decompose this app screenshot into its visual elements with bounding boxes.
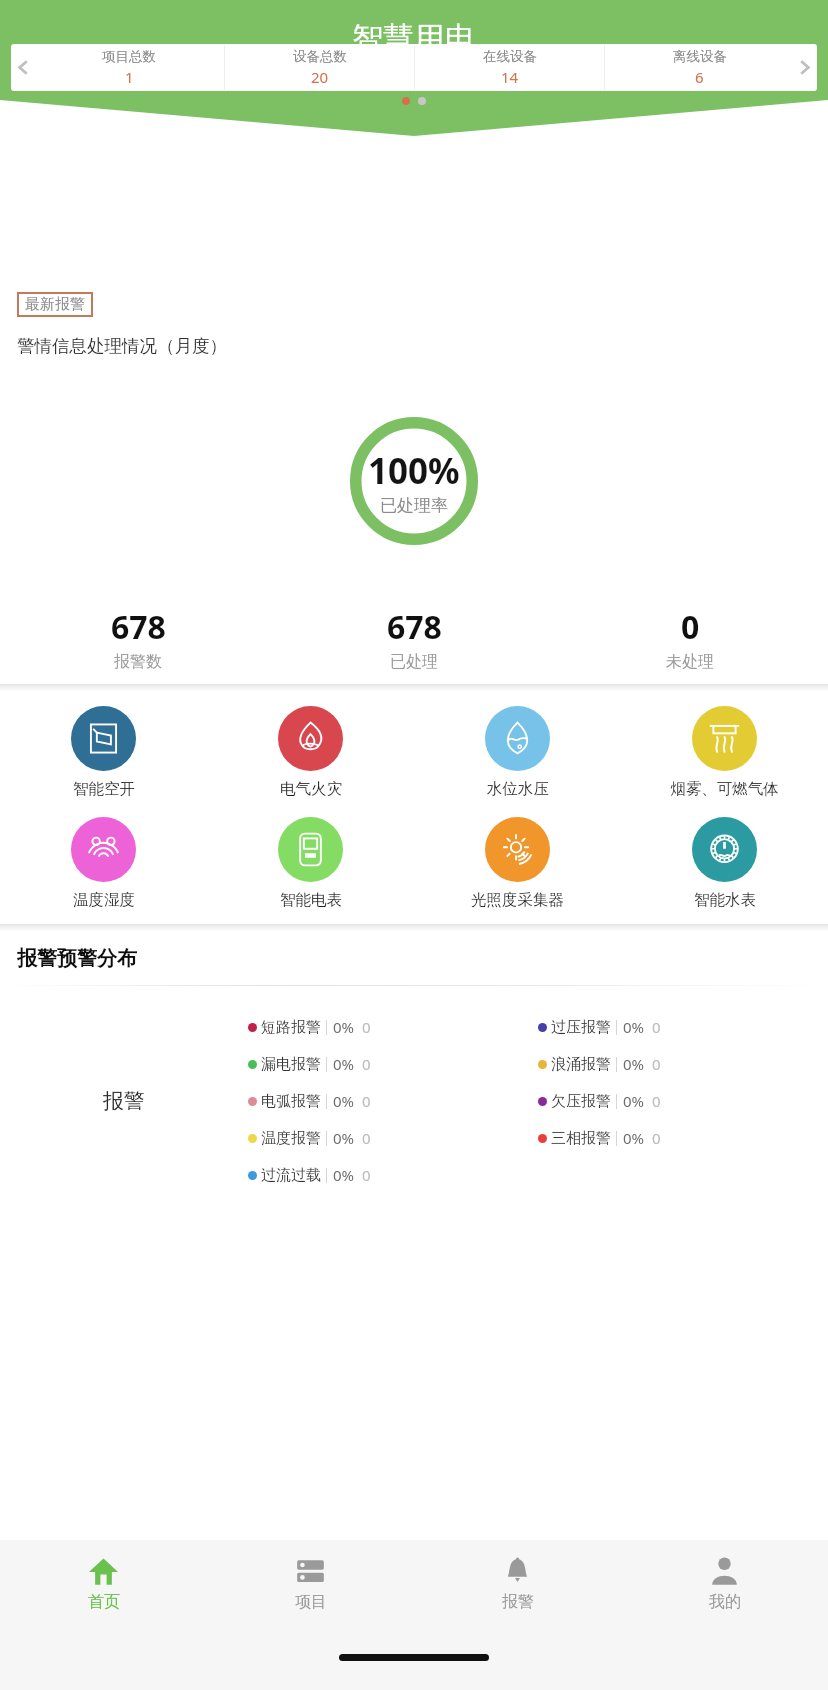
staticText: 警情信息处理情况（月度） <box>17 335 227 357</box>
staticText: 三相报警 <box>551 1129 611 1148</box>
button[interactable]: 首页 <box>0 1540 207 1628</box>
staticText: 智能水表 <box>694 890 756 910</box>
staticText: 1 <box>125 67 134 87</box>
staticText: 已处理 <box>390 652 438 672</box>
staticText: 20 <box>311 67 329 87</box>
button[interactable]: 温度报警 <box>248 1128 538 1148</box>
button[interactable]: 设备总数 <box>225 44 414 91</box>
staticText: 未处理 <box>666 652 714 672</box>
button[interactable]: 温度湿度 <box>0 817 207 910</box>
staticText: 在线设备 <box>483 48 537 65</box>
staticText: 0% <box>333 1054 355 1074</box>
staticText: 离线设备 <box>673 48 727 65</box>
button[interactable]: 三相报警 <box>538 1128 828 1148</box>
staticText: 浪涌报警 <box>551 1055 611 1074</box>
staticText: 0 <box>652 1017 661 1037</box>
button[interactable]: 项目 <box>207 1540 414 1628</box>
staticText: 0% <box>333 1128 355 1148</box>
button[interactable]: 最新报警 <box>17 292 93 317</box>
staticText: 设备总数 <box>293 48 347 65</box>
button[interactable]: 烟雾、可燃气体 <box>621 706 828 799</box>
button[interactable]: 在线设备 <box>415 44 604 91</box>
staticText: 我的 <box>709 1592 741 1612</box>
staticText: 0% <box>623 1054 645 1074</box>
staticText: 0 <box>362 1091 371 1111</box>
staticText: 14 <box>501 67 519 87</box>
button[interactable]: 报警 <box>414 1540 621 1628</box>
button[interactable]: 欠压报警 <box>538 1091 828 1111</box>
staticText: 0 <box>652 1054 661 1074</box>
staticText: 电气火灾 <box>280 779 342 799</box>
staticText: 光照度采集器 <box>471 890 564 910</box>
staticText: 烟雾、可燃气体 <box>670 779 779 799</box>
staticText: 欠压报警 <box>551 1092 611 1111</box>
staticText: 0% <box>623 1017 645 1037</box>
button[interactable]: 离线设备 <box>605 44 794 91</box>
staticText: 漏电报警 <box>261 1055 321 1074</box>
staticText: 0% <box>333 1091 355 1111</box>
staticText: 短路报警 <box>261 1018 321 1037</box>
staticText: 已处理率 <box>380 495 448 516</box>
staticText: 报警 <box>502 1592 534 1612</box>
button[interactable]: Previous page <box>11 44 34 91</box>
button[interactable]: 光照度采集器 <box>414 817 621 910</box>
staticText: 电弧报警 <box>261 1092 321 1111</box>
staticText: 0% <box>333 1017 355 1037</box>
staticText: 首页 <box>88 1592 120 1612</box>
button[interactable]: 项目总数 <box>34 44 224 91</box>
staticText: 报警数 <box>114 652 162 672</box>
staticText: 报警 <box>103 1088 145 1114</box>
staticText: 678 <box>387 605 442 649</box>
staticText: 智能空开 <box>73 779 135 799</box>
staticText: 0 <box>652 1091 661 1111</box>
staticText: 过流过载 <box>261 1166 321 1185</box>
button[interactable]: 电弧报警 <box>248 1091 538 1111</box>
staticText: 0% <box>623 1128 645 1148</box>
button[interactable]: 过流过载 <box>248 1165 538 1185</box>
staticText: 678 <box>111 605 166 649</box>
button[interactable]: 短路报警 <box>248 1017 538 1037</box>
staticText: 0% <box>333 1165 355 1185</box>
button[interactable]: 电气火灾 <box>207 706 414 799</box>
button[interactable]: 678 <box>276 605 552 672</box>
staticText: 0 <box>652 1128 661 1148</box>
staticText: 水位水压 <box>487 779 549 799</box>
button[interactable]: 678 <box>0 605 276 672</box>
staticText: 智慧用电 <box>352 19 476 58</box>
staticText: 6 <box>695 67 704 87</box>
button[interactable]: 水位水压 <box>414 706 621 799</box>
staticText: 温度湿度 <box>73 890 135 910</box>
staticText: 0% <box>623 1091 645 1111</box>
button[interactable]: 我的 <box>621 1540 828 1628</box>
staticText: 项目总数 <box>102 48 156 65</box>
staticText: 过压报警 <box>551 1018 611 1037</box>
staticText: 100% <box>368 447 460 495</box>
button[interactable]: 智能水表 <box>621 817 828 910</box>
staticText: 报警预警分布 <box>17 946 137 971</box>
staticText: 温度报警 <box>261 1129 321 1148</box>
button[interactable]: 智能空开 <box>0 706 207 799</box>
staticText: 项目 <box>295 1592 327 1612</box>
staticText: 0 <box>362 1017 371 1037</box>
button[interactable]: 漏电报警 <box>248 1054 538 1074</box>
staticText: 0 <box>362 1165 371 1185</box>
staticText: 0 <box>362 1054 371 1074</box>
staticText: 0 <box>681 605 700 649</box>
staticText: 0 <box>362 1128 371 1148</box>
button[interactable]: 智能电表 <box>207 817 414 910</box>
button[interactable]: Next page <box>794 44 817 91</box>
staticText: 智能电表 <box>280 890 342 910</box>
staticText: 最新报警 <box>25 295 85 314</box>
button[interactable]: 0 <box>552 605 828 672</box>
button[interactable]: 浪涌报警 <box>538 1054 828 1074</box>
button[interactable]: 过压报警 <box>538 1017 828 1037</box>
